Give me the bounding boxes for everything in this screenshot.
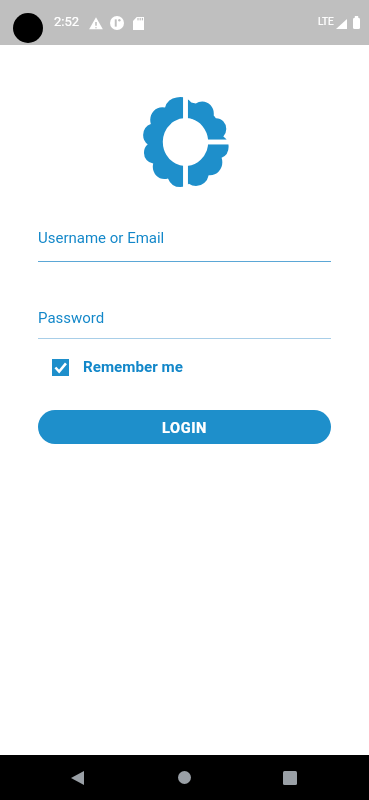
staticText: 2:52 [54,14,80,29]
staticText: LOGIN [162,419,208,436]
staticText: Remember me [83,358,183,376]
button[interactable]: LOGIN [38,410,331,444]
staticText: LTE [318,16,334,28]
button[interactable]: Remember me [52,358,183,376]
button[interactable]: Recents [266,755,314,800]
staticText: Username or Email [38,229,165,247]
staticText: Password [38,309,105,327]
button[interactable]: Back [53,755,101,800]
button[interactable]: Home [160,755,208,800]
